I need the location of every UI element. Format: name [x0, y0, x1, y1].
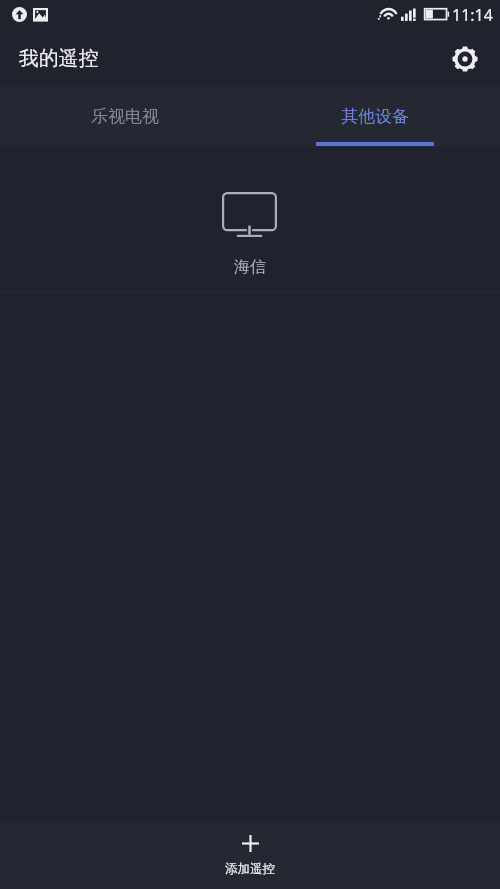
button[interactable]: 添加遥控 — [0, 821, 500, 889]
staticText: 我的遥控 — [19, 46, 99, 71]
staticText: 海信 — [234, 257, 266, 277]
button[interactable]: Settings — [444, 36, 488, 80]
staticText: 乐视电视 — [91, 106, 159, 127]
staticText: 其他设备 — [341, 106, 409, 127]
button[interactable]: 其他设备 — [250, 87, 500, 147]
staticText: 11:14 — [452, 4, 493, 26]
staticText: 添加遥控 — [225, 861, 275, 877]
button[interactable]: 乐视电视 — [0, 87, 250, 147]
button[interactable]: 海信 — [166, 147, 333, 291]
